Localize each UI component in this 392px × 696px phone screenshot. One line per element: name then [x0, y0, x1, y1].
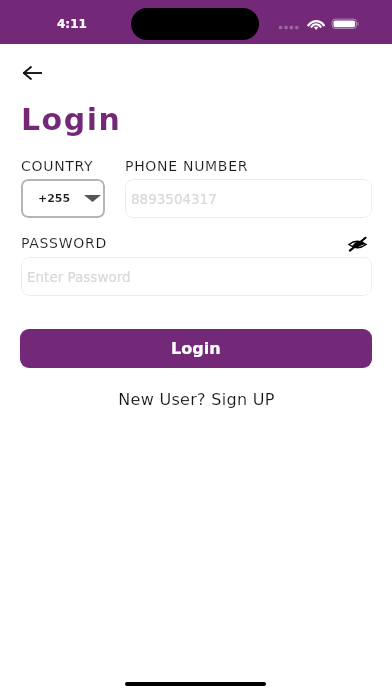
staticText: PASSWORD: [21, 235, 107, 251]
button[interactable]: +255: [21, 179, 105, 218]
staticText: Enter Password: [27, 269, 131, 285]
staticText: +255: [38, 192, 71, 205]
button[interactable]: 8893504317: [125, 179, 372, 218]
button[interactable]: Login: [20, 329, 372, 368]
staticText: Login: [21, 102, 122, 137]
staticText: Login: [171, 339, 221, 358]
staticText: 4:11: [57, 17, 87, 31]
button[interactable]: Back: [12, 53, 52, 93]
button[interactable]: New User? Sign UP: [110, 387, 283, 412]
button[interactable]: Enter Password: [21, 257, 372, 296]
staticText: 8893504317: [131, 191, 217, 207]
staticText: PHONE NUMBER: [125, 158, 249, 174]
button[interactable]: Show password: [342, 231, 373, 257]
staticText: COUNTRY: [21, 158, 94, 174]
